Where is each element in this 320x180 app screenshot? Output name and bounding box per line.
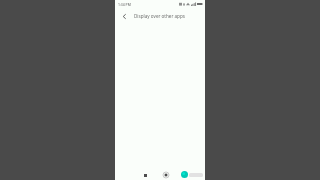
- button[interactable]: Home: [162, 171, 170, 179]
- staticText: Display over other apps: [134, 13, 185, 19]
- button[interactable]: Back: [119, 11, 129, 21]
- button[interactable]: Recent apps: [142, 172, 149, 179]
- button[interactable]: Screen recorder: [181, 171, 203, 178]
- staticText: 1:34 PM: [118, 2, 131, 7]
